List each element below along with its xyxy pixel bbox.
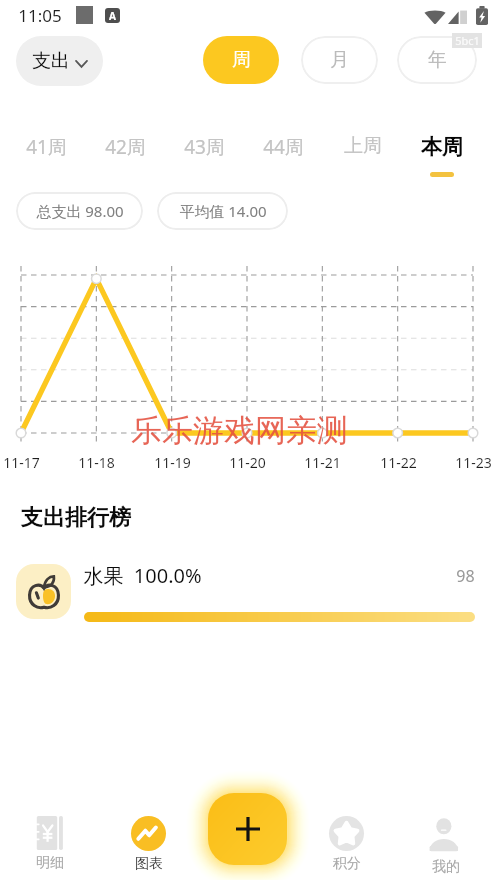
staticText: 11-23	[455, 453, 492, 472]
staticText: 平均值 14.00	[179, 201, 267, 221]
button[interactable]: 上周	[323, 128, 402, 170]
staticText: 44周	[263, 134, 304, 160]
staticText: 11-18	[78, 453, 115, 472]
staticText: 乐乐游戏网亲测	[131, 411, 348, 450]
button[interactable]: 44周	[244, 128, 323, 172]
staticText: 周	[232, 48, 251, 72]
button[interactable]: 年	[397, 36, 477, 84]
staticText: 11-21	[304, 453, 341, 472]
button[interactable]: 积分	[297, 816, 396, 873]
staticText: 11:05	[18, 4, 62, 27]
button[interactable]: 月	[301, 36, 378, 84]
button[interactable]: 42周	[86, 128, 165, 172]
staticText: 43周	[184, 134, 225, 160]
staticText: 11-20	[229, 453, 266, 472]
staticText: 年	[428, 48, 447, 72]
staticText: 积分	[333, 855, 361, 873]
button[interactable]: 平均值 14.00	[157, 192, 288, 230]
button[interactable]: 图表	[99, 816, 198, 873]
staticText: 98	[456, 565, 475, 587]
staticText: 图表	[135, 855, 163, 873]
button[interactable]: 总支出 98.00	[16, 192, 143, 230]
staticText: 水果 100.0%	[83, 562, 202, 589]
staticText: 月	[330, 48, 349, 72]
button[interactable]: 我的	[396, 816, 495, 876]
staticText: 支出	[32, 49, 70, 73]
staticText: 上周	[344, 134, 382, 158]
staticText: 41周	[26, 134, 67, 160]
button[interactable]: 支出	[16, 36, 103, 86]
staticText: 本周	[421, 134, 463, 160]
staticText: 5bc1	[455, 33, 480, 48]
staticText: 支出排行榜	[21, 504, 131, 532]
button[interactable]: Add	[208, 793, 287, 865]
button[interactable]: 水果	[16, 564, 71, 619]
staticText: 明细	[36, 854, 64, 872]
button[interactable]: 41周	[6, 128, 86, 172]
staticText: 42周	[105, 134, 146, 160]
staticText: 11-17	[3, 453, 40, 472]
button[interactable]: 43周	[165, 128, 244, 172]
button[interactable]: 明细	[0, 816, 99, 872]
staticText: 11-22	[380, 453, 417, 472]
staticText: 总支出 98.00	[36, 201, 124, 221]
staticText: 11-19	[154, 453, 191, 472]
button[interactable]: 周	[203, 36, 279, 84]
staticText: 我的	[432, 858, 460, 876]
staticText: A	[109, 9, 116, 23]
button[interactable]: 本周	[402, 128, 481, 177]
